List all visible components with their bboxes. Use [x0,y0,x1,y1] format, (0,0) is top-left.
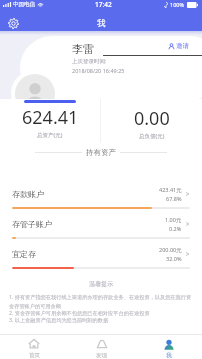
staticText: 中国电信 [13,1,35,8]
button[interactable]: 宜定存 [0,239,202,269]
staticText: 李雷 [72,42,94,56]
button[interactable]: 存款账户 [0,160,202,209]
button[interactable]: 邀请 [168,42,189,50]
staticText: 首页 [29,352,40,359]
staticText: 我 [97,18,106,29]
staticText: 总资产(元) [37,131,63,139]
staticText: 上次登录时间: [72,57,107,65]
staticText: 存管子账户 [12,219,52,229]
staticText: 发现 [96,352,107,359]
button[interactable]: 发现 [68,335,135,359]
staticText: 2018/08/20 16:49:25 [72,67,125,74]
staticText: 总负债(元) [139,132,165,140]
staticText: 0.00 [134,106,170,131]
staticText: 温馨提示 [89,280,113,288]
staticText: 200.00元 [159,246,182,254]
staticText: 2. 资金存管账户可用余额不包括您已在相对应平台的在途投资 [9,309,150,316]
button[interactable]: 首页 [0,335,68,359]
staticText: 1. 持有资产指您在我行线上渠道所办理的存款业务、在途投资，以及您在我行资金存管… [9,293,193,309]
staticText: 存款账户 [12,189,44,199]
button[interactable]: 存管子账户 [0,209,202,239]
staticText: 我 [166,352,172,359]
staticText: 32.0% [166,255,182,262]
staticText: 宜定存 [12,249,36,259]
button[interactable]: Settings [7,17,19,29]
staticText: 3. 以上金融资产信息均为您当前时刻的数据 [9,316,109,323]
staticText: 423.41元 [159,186,182,194]
staticText: 624.41 [22,105,79,130]
staticText: 邀请 [176,42,189,50]
staticText: 持有资产 [86,148,116,157]
staticText: 100% [170,1,185,8]
button[interactable]: 我 [135,335,202,359]
staticText: 67.8% [166,195,182,202]
staticText: 0.2% [169,225,182,232]
staticText: 17:42 [95,0,112,9]
staticText: 1.00元 [165,216,182,224]
